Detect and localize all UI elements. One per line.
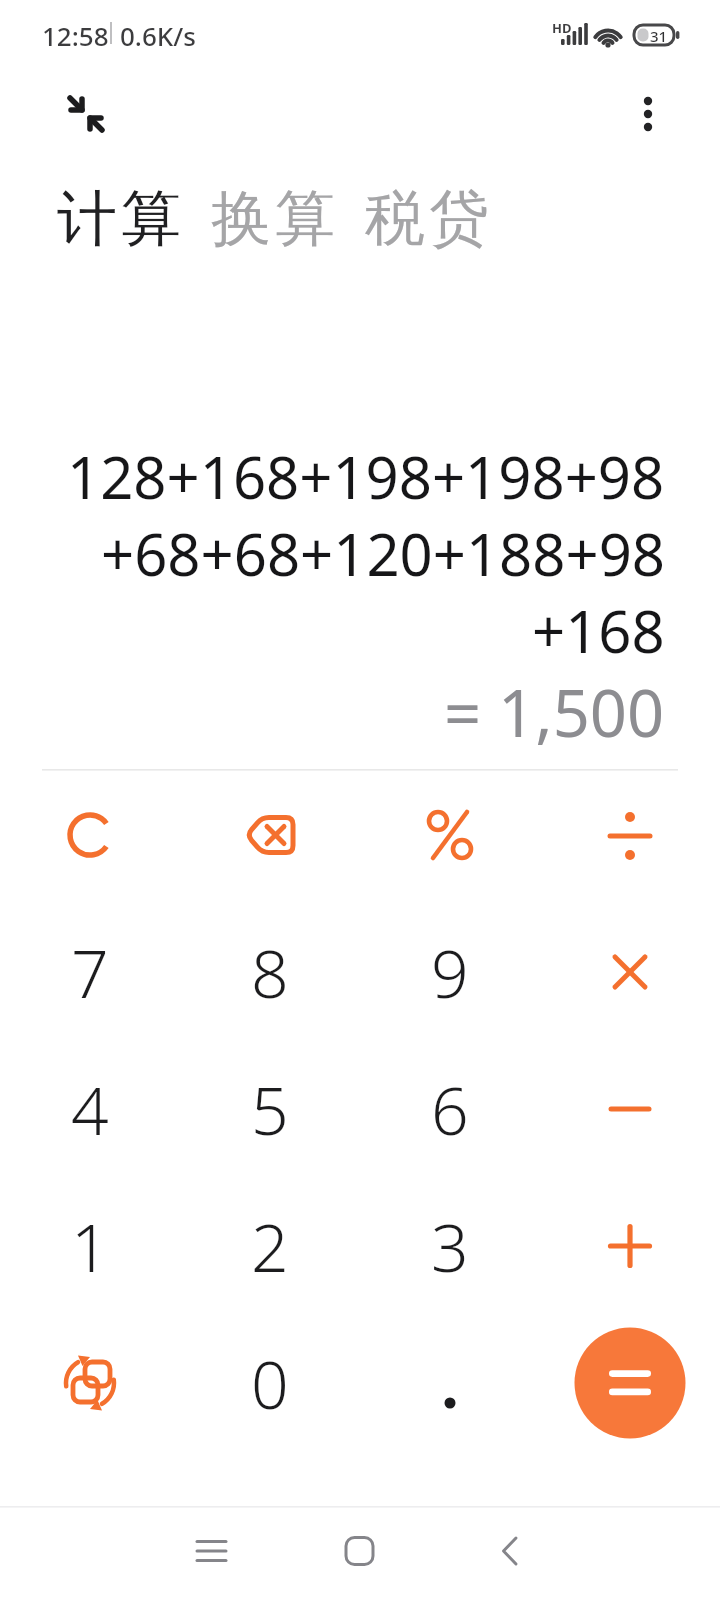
staticText: 5 [251,1064,289,1154]
staticText: 3 [431,1201,469,1291]
button[interactable] [540,1314,720,1451]
staticText: 0 [251,1338,289,1428]
button[interactable] [360,766,540,903]
staticText: 2 [251,1201,289,1291]
staticText: 6 [431,1064,469,1154]
staticText: 12:58 [42,18,109,50]
staticText: 9 [431,927,469,1017]
staticText: 7 [71,927,109,1017]
button[interactable] [180,766,360,903]
button[interactable]: 3 [360,1177,540,1314]
button[interactable] [0,1314,180,1451]
staticText: 128+168+198+198+98 [67,437,665,514]
staticText: +168 [532,591,665,668]
staticText: 税贷 [363,181,491,257]
button[interactable]: 0 [180,1314,360,1451]
button[interactable]: 7 [0,903,180,1040]
button[interactable]: 计算 [55,181,183,257]
button[interactable] [622,88,674,140]
staticText: 8 [251,927,289,1017]
button[interactable]: 5 [180,1040,360,1177]
button[interactable]: 4 [0,1040,180,1177]
button[interactable]: 换算 [209,181,337,257]
staticText: 4 [71,1064,109,1154]
button[interactable] [60,88,112,140]
button[interactable] [540,1177,720,1314]
staticText: = 1,500 [444,668,665,746]
button[interactable]: 8 [180,903,360,1040]
button[interactable]: 税贷 [363,181,491,257]
button[interactable] [0,766,180,903]
button[interactable]: 2 [180,1177,360,1314]
button[interactable] [540,903,720,1040]
staticText: HD [552,19,572,37]
staticText: 31 [650,26,668,46]
staticText: +68+68+120+188+98 [101,514,665,591]
staticText: 1 [71,1201,109,1291]
button[interactable]: 1 [0,1177,180,1314]
staticText: 换算 [209,181,337,257]
button[interactable]: 6 [360,1040,540,1177]
button[interactable] [540,766,720,903]
button[interactable]: 9 [360,903,540,1040]
button[interactable] [540,1040,720,1177]
button[interactable] [360,1314,540,1451]
staticText: 计算 [55,181,183,257]
staticText: 0.6K/s [120,18,196,50]
